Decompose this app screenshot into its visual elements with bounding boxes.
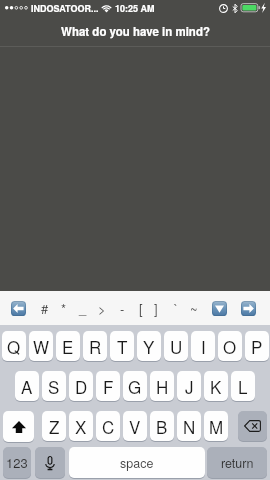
button[interactable]: Y [137, 331, 161, 362]
button[interactable]: T [110, 331, 134, 362]
button[interactable]: G [123, 371, 147, 402]
button[interactable]: - [113, 298, 131, 318]
button[interactable]: U [164, 331, 188, 362]
staticText: T [117, 334, 128, 358]
staticText: C [102, 414, 115, 438]
button[interactable]: Done [241, 301, 256, 316]
staticText: A [21, 374, 33, 398]
staticText: O [223, 334, 237, 358]
button[interactable]: V [123, 411, 147, 442]
button[interactable]: [ [132, 298, 150, 318]
staticText: B [156, 414, 168, 438]
button[interactable]: C [96, 411, 120, 442]
button[interactable]: space [69, 447, 205, 479]
button[interactable]: Backspace [238, 411, 267, 442]
staticText: H [156, 374, 169, 398]
button[interactable]: E [56, 331, 80, 362]
button[interactable]: # [36, 298, 54, 318]
button[interactable]: > [93, 298, 111, 318]
staticText: W [33, 334, 50, 358]
staticText: V [129, 414, 141, 438]
button[interactable]: B [150, 411, 174, 442]
staticText: M [209, 414, 224, 438]
staticText: ` [174, 299, 179, 318]
staticText: F [103, 374, 114, 398]
staticText: N [183, 414, 196, 438]
staticText: # [41, 299, 49, 318]
staticText: K [210, 374, 222, 398]
button[interactable]: R [83, 331, 107, 362]
staticText: S [48, 374, 60, 398]
staticText: - [120, 299, 125, 318]
staticText: * [61, 299, 67, 318]
staticText: INDOSATOOR... [31, 2, 99, 15]
staticText: I [201, 334, 206, 358]
staticText: 123 [6, 453, 28, 472]
button[interactable]: ] [147, 298, 165, 318]
button[interactable]: Previous field [11, 301, 26, 316]
button[interactable]: P [245, 331, 269, 362]
staticText: J [185, 374, 194, 398]
staticText: What do you have in mind? [61, 23, 210, 39]
button[interactable]: S [42, 371, 66, 402]
button[interactable]: A [15, 371, 39, 402]
staticText: > [98, 299, 106, 318]
button[interactable]: Z [42, 411, 66, 442]
staticText: 10:25 AM [115, 2, 155, 15]
button[interactable]: Shift [3, 411, 34, 443]
staticText: Z [49, 414, 60, 438]
staticText: U [170, 334, 183, 358]
button[interactable]: _ [74, 298, 92, 318]
button[interactable]: D [69, 371, 93, 402]
staticText: L [238, 374, 248, 398]
staticText: space [120, 454, 154, 472]
staticText: R [89, 334, 102, 358]
button[interactable]: Dictation [35, 447, 65, 479]
staticText: ] [154, 299, 158, 318]
staticText: ~ [190, 299, 198, 318]
button[interactable]: Q [2, 331, 26, 362]
staticText: X [75, 414, 87, 438]
button[interactable]: Next field [212, 301, 227, 316]
staticText: [ [139, 299, 143, 318]
staticText: Q [7, 334, 21, 358]
button[interactable]: X [69, 411, 93, 442]
staticText: D [75, 374, 88, 398]
button[interactable]: L [231, 371, 255, 402]
button[interactable]: ` [167, 298, 185, 318]
staticText: E [62, 334, 74, 358]
button[interactable]: N [177, 411, 201, 442]
button[interactable]: * [55, 298, 73, 318]
staticText: Y [143, 334, 155, 358]
button[interactable]: K [204, 371, 228, 402]
button[interactable]: I [191, 331, 215, 362]
button[interactable]: 123 [3, 447, 31, 479]
button[interactable]: return [207, 447, 267, 479]
staticText: P [251, 334, 263, 358]
button[interactable]: F [96, 371, 120, 402]
button[interactable]: H [150, 371, 174, 402]
button[interactable]: ~ [185, 298, 203, 318]
staticText: G [128, 374, 142, 398]
staticText: _ [79, 299, 87, 318]
button[interactable]: M [204, 411, 228, 442]
button[interactable]: O [218, 331, 242, 362]
button[interactable]: J [177, 371, 201, 402]
staticText: return [221, 454, 254, 472]
button[interactable]: W [29, 331, 53, 362]
